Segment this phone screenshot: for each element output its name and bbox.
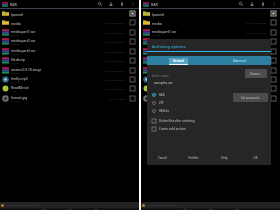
button[interactable]: media.part2.rar	[0, 37, 139, 46]
button[interactable]: ReadMe.txt	[0, 84, 139, 93]
button[interactable]: General	[147, 56, 209, 65]
button[interactable]: Select filedir.zip	[270, 57, 277, 64]
staticText: Sunset.jpg	[11, 95, 28, 99]
button[interactable]: Cancel	[147, 151, 178, 165]
button[interactable]: Select media.part3.rar	[129, 48, 136, 55]
button[interactable]: Select media	[270, 19, 277, 26]
staticText: Create solid archive	[159, 127, 186, 131]
staticText: Profiles	[188, 156, 199, 160]
staticText: media.part1.rar	[152, 29, 177, 33]
button[interactable]: senses-0.9.10.tar.gz	[141, 66, 280, 75]
button[interactable]: More options	[268, 0, 279, 8]
button[interactable]: More options	[127, 0, 138, 8]
staticText: Archiving options	[152, 44, 186, 50]
button[interactable]: Browse...	[245, 69, 267, 78]
button[interactable]: Search	[94, 0, 105, 8]
button[interactable]: Delete files after archiving	[152, 117, 195, 125]
button[interactable]: OK	[240, 151, 271, 165]
button[interactable]: Sunset.jpg	[0, 94, 139, 103]
button[interactable]: media.part3.rar	[141, 47, 280, 56]
button[interactable]: Select media.part3.rar	[270, 48, 277, 55]
staticText: 820 KB	[11, 71, 20, 74]
staticText: 2012/10/09 08:22	[105, 78, 126, 81]
staticText: 6.0 MB	[11, 33, 20, 36]
staticText: (parent)	[152, 12, 165, 16]
staticText: 1.2 MB	[11, 99, 20, 102]
button[interactable]: Select Sunset.jpg	[129, 95, 136, 102]
button[interactable]: Select Sunset.jpg	[270, 95, 277, 102]
button[interactable]: Create solid archive	[152, 125, 186, 133]
button[interactable]: media.part2.rar	[141, 37, 280, 46]
button[interactable]: Home	[206, 208, 216, 210]
button[interactable]: Set password...	[233, 93, 268, 102]
staticText: Archiving media.part1.rar 0%	[5, 204, 37, 207]
button[interactable]: (parent)	[141, 9, 280, 18]
button[interactable]: Select (parent)	[270, 10, 277, 17]
button[interactable]: Select (parent)	[129, 10, 136, 17]
button[interactable]: Recents	[232, 208, 242, 210]
staticText: samples.rar	[154, 80, 173, 85]
button[interactable]: media	[141, 18, 280, 27]
button[interactable]: filedir.zip	[0, 56, 139, 65]
staticText: media	[11, 21, 21, 25]
staticText: 2012/10/09 08:22	[246, 31, 267, 34]
button[interactable]: Search	[235, 0, 246, 8]
button[interactable]: Add user	[105, 0, 116, 8]
button[interactable]: ReadMe.txt	[141, 84, 280, 93]
staticText: Archive name	[152, 74, 169, 78]
staticText: 2012/10/09 08:22	[105, 59, 126, 62]
button[interactable]: Delete	[257, 0, 268, 8]
button[interactable]: Recents	[91, 208, 101, 210]
button[interactable]: Select firefly.mp3	[129, 76, 136, 83]
button[interactable]: firefly.mp3	[141, 75, 280, 84]
staticText: (parent)	[11, 12, 24, 16]
staticText: 3.2 MB	[11, 52, 20, 55]
staticText: 2012/10/09 08:22	[105, 21, 126, 24]
staticText: senses-0.9.10.tar.gz	[11, 67, 42, 71]
button[interactable]: Select firefly.mp3	[270, 76, 277, 83]
button[interactable]: Sunset.jpg	[141, 94, 280, 103]
button[interactable]: Back	[180, 208, 190, 210]
button[interactable]: Help	[209, 151, 240, 165]
button[interactable]: Select senses-0.9.10.tar.gz	[270, 67, 277, 74]
button[interactable]: Add user	[246, 0, 257, 8]
button[interactable]: Select filedir.zip	[129, 57, 136, 64]
button[interactable]: Select media.part1.rar	[129, 29, 136, 36]
button[interactable]: Profiles	[178, 151, 209, 165]
staticText: firefly.mp3	[11, 76, 28, 80]
button[interactable]: Advanced	[209, 56, 271, 65]
button[interactable]: RAR	[152, 91, 165, 99]
button[interactable]: media.part1.rar	[141, 28, 280, 37]
button[interactable]: Select media	[129, 19, 136, 26]
staticText: media.part2.rar	[152, 38, 177, 42]
button[interactable]: Delete	[116, 0, 127, 8]
button[interactable]: (parent)	[0, 9, 139, 18]
button[interactable]: filedir.zip	[141, 56, 280, 65]
button[interactable]: Select senses-0.9.10.tar.gz	[129, 67, 136, 74]
button[interactable]: Select ReadMe.txt	[129, 85, 136, 92]
staticText: 2012/10/09 08:22	[105, 50, 126, 53]
button[interactable]: Back	[39, 208, 49, 210]
button[interactable]: media	[0, 18, 139, 27]
button[interactable]: RAR 4.x	[152, 107, 170, 115]
button[interactable]: Home	[65, 208, 75, 210]
button[interactable]: Select ReadMe.txt	[270, 85, 277, 92]
staticText: 2012/10/09 08:22	[246, 50, 267, 53]
staticText: firefly.mp3	[152, 76, 169, 80]
button[interactable]: firefly.mp3	[0, 75, 139, 84]
button[interactable]: Select media.part2.rar	[270, 38, 277, 45]
button[interactable]: Select media.part2.rar	[129, 38, 136, 45]
staticText: Sunset.jpg	[152, 95, 169, 99]
staticText: filedir.zip	[11, 57, 25, 61]
button[interactable]: senses-0.9.10.tar.gz	[0, 66, 139, 75]
button[interactable]: media.part3.rar	[0, 47, 139, 56]
staticText: ReadMe.txt	[11, 85, 29, 89]
button[interactable]: Select media.part1.rar	[270, 29, 277, 36]
button[interactable]: media.part1.rar	[0, 28, 139, 37]
button[interactable]: ZIP	[152, 99, 164, 107]
